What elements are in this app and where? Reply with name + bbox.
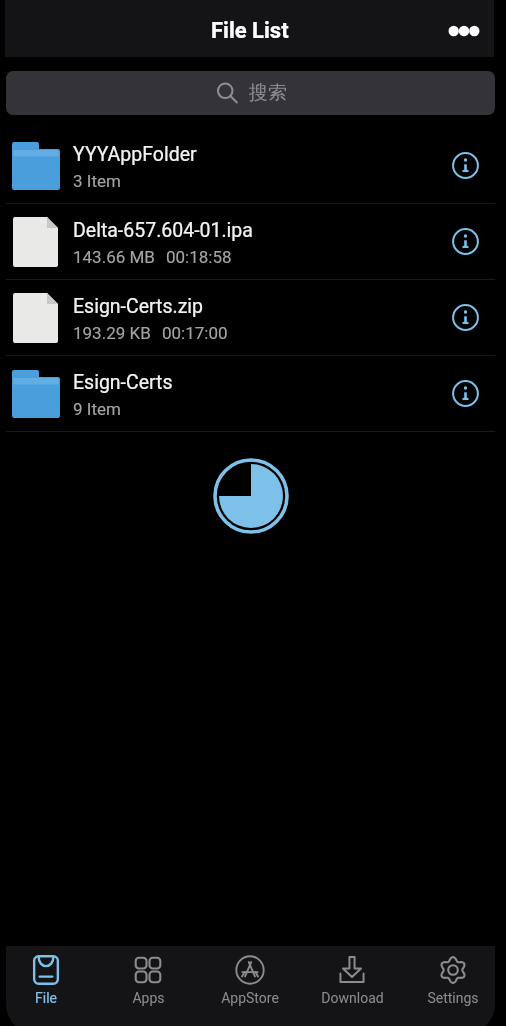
staticText: Settings — [427, 990, 479, 1006]
staticText: Esign-Certs.zip — [73, 295, 204, 318]
button[interactable]: Info — [435, 280, 506, 355]
button[interactable]: Esign-Certs.zip — [0, 280, 506, 355]
staticText: Apps — [132, 990, 165, 1006]
staticText: 搜索 — [249, 81, 287, 105]
staticText: File — [35, 990, 57, 1006]
staticText: Delta-657.604-01.ipa — [73, 219, 253, 242]
button[interactable]: Info — [435, 356, 506, 431]
button[interactable]: Delta-657.604-01.ipa — [0, 204, 506, 279]
staticText: 9 Item — [73, 399, 121, 419]
staticText: 3 Item — [73, 171, 121, 191]
button[interactable]: Esign-Certs — [0, 356, 506, 431]
button[interactable]: Settings — [405, 946, 495, 1018]
button[interactable]: Info — [435, 128, 506, 203]
staticText: Esign-Certs — [73, 371, 173, 394]
button[interactable]: AppStore — [202, 946, 298, 1018]
button[interactable]: Info — [435, 204, 506, 279]
staticText: 00:18:58 — [166, 247, 232, 267]
staticText: 193.29 KB — [73, 323, 151, 343]
staticText: Download — [321, 990, 384, 1006]
staticText: 00:17:00 — [162, 323, 228, 343]
button[interactable]: YYYAppFolder — [0, 128, 506, 203]
button[interactable]: Apps — [100, 946, 196, 1018]
button[interactable]: 搜索 — [6, 71, 495, 115]
button[interactable]: Download — [304, 946, 400, 1018]
staticText: YYYAppFolder — [73, 143, 197, 166]
staticText: AppStore — [221, 990, 279, 1006]
staticText: 143.66 MB — [73, 247, 155, 267]
staticText: File List — [211, 18, 289, 44]
button[interactable]: File — [6, 946, 94, 1018]
button[interactable]: More options — [441, 8, 487, 54]
